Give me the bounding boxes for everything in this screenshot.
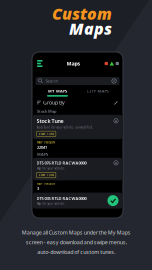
staticText: MAP VERSION	[37, 141, 55, 144]
staticText: Stock Map	[37, 108, 57, 114]
button[interactable]: Group By	[32, 98, 123, 107]
staticText: DT5 035 RTLD RACWA0000	[36, 196, 86, 201]
staticText: DT5 076 RTLD RACWA0000	[36, 160, 86, 165]
staticText: Manage all Custom Maps under the My Maps…	[21, 229, 130, 255]
button[interactable]: MY MAPS	[37, 87, 77, 97]
staticText: 3	[37, 186, 39, 191]
button[interactable]: Stock Tune	[32, 115, 123, 139]
staticText: Stock Tune	[36, 117, 63, 124]
staticText: Search	[45, 78, 57, 84]
button[interactable]: Home	[37, 59, 43, 67]
staticText: MAPS	[37, 151, 48, 157]
button[interactable]: CITY MAPS	[77, 87, 117, 97]
staticText: Stock Tune for your vehicle, unmodified.	[36, 126, 93, 129]
staticText: Maps	[69, 18, 112, 39]
staticText: MAP VERSION	[37, 182, 55, 185]
button[interactable]: DT5 076 RTLD RACWA0000	[32, 158, 123, 180]
staticText: CITY MAPS	[86, 88, 108, 94]
staticText: VIEW TUNE	[39, 173, 54, 177]
staticText: Maps	[67, 60, 81, 67]
button[interactable]: Search	[32, 75, 123, 87]
staticText: MY MAPS	[48, 88, 67, 94]
staticText: Group By	[43, 99, 65, 106]
staticText: Custom	[52, 3, 112, 24]
staticText: VIEW TUNE	[39, 132, 54, 136]
staticText: Map for your vehicle.	[36, 202, 65, 205]
button[interactable]: DT5 035 RTLD RACWA0000	[32, 191, 123, 209]
staticText: 22041	[37, 145, 47, 150]
staticText: Map for your vehicle.	[36, 167, 65, 170]
